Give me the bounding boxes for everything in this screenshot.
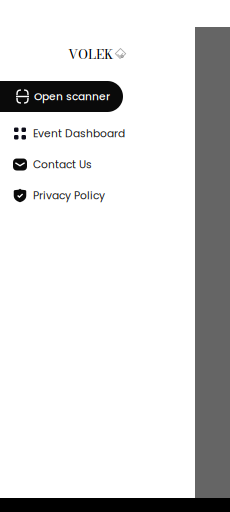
staticText: Privacy Policy	[33, 188, 105, 203]
button[interactable]: Event Dashboard	[0, 118, 195, 149]
button[interactable]: Contact Us	[0, 149, 195, 180]
button[interactable]: Privacy Policy	[0, 180, 195, 211]
staticText: Event Dashboard	[33, 126, 125, 141]
button[interactable]: Open scanner	[0, 81, 123, 112]
staticText: Open scanner	[34, 89, 110, 104]
staticText: Contact Us	[33, 157, 92, 172]
staticText: VOLEK	[68, 44, 113, 64]
